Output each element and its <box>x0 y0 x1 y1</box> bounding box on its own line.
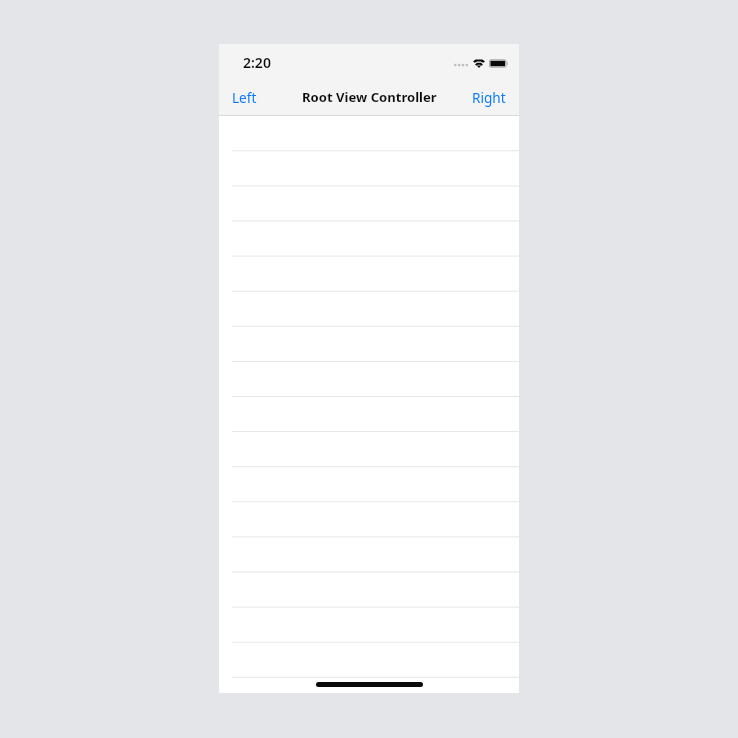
button[interactable]: Left <box>219 83 270 114</box>
button[interactable] <box>219 326 519 361</box>
staticText: 2:20 <box>243 53 271 72</box>
button[interactable] <box>219 466 519 501</box>
button[interactable] <box>219 361 519 396</box>
staticText: Left <box>232 88 257 107</box>
button[interactable]: Right <box>459 83 519 114</box>
other: Battery <box>489 59 509 68</box>
button[interactable] <box>219 396 519 431</box>
staticText: Right <box>472 88 506 107</box>
button[interactable] <box>219 501 519 536</box>
button[interactable] <box>219 641 519 676</box>
button[interactable] <box>219 291 519 326</box>
other: Cellular signal <box>454 59 468 68</box>
other: Wi-Fi <box>473 59 485 68</box>
staticText: Root View Controller <box>302 88 437 106</box>
button[interactable] <box>219 431 519 466</box>
other: Home indicator <box>316 682 423 687</box>
